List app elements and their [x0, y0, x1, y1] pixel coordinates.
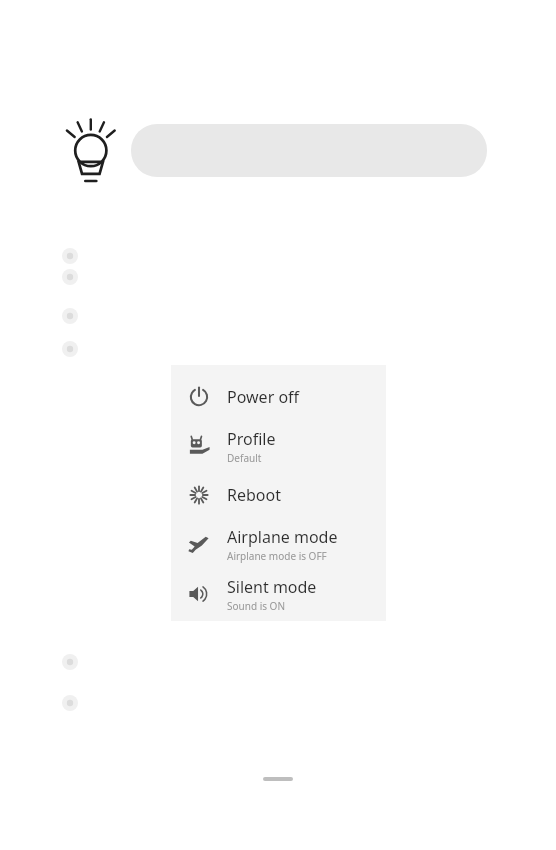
staticText: Silent mode [227, 576, 317, 598]
button[interactable]: Airplane mode [171, 519, 386, 569]
staticText: Airplane mode [227, 526, 338, 548]
staticText: Reboot [227, 484, 281, 506]
button[interactable]: Reboot [171, 471, 386, 519]
button[interactable]: Tip [62, 110, 122, 188]
button[interactable]: Silent mode [171, 569, 386, 619]
staticText: Airplane mode is OFF [227, 549, 327, 563]
staticText: Profile [227, 428, 276, 450]
button[interactable]: Power off [171, 373, 386, 421]
staticText: Default [227, 451, 262, 465]
button[interactable] [131, 124, 487, 177]
staticText: Power off [227, 386, 300, 408]
button[interactable]: Profile [171, 421, 386, 471]
staticText: Sound is ON [227, 599, 286, 613]
